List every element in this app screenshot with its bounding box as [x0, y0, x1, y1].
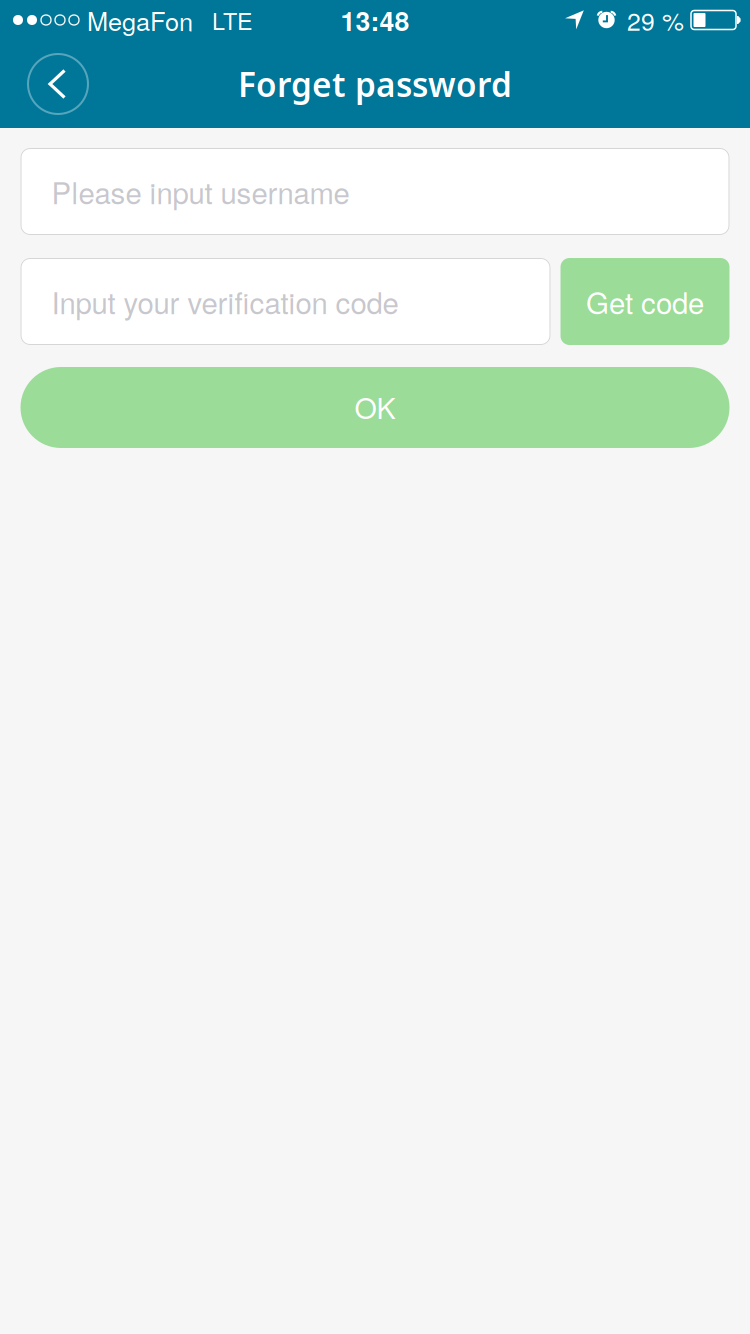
button[interactable]: Back	[14, 40, 102, 128]
staticText: 13:48	[340, 1, 409, 39]
staticText: Please input username	[51, 170, 349, 212]
button[interactable]: OK	[20, 367, 729, 448]
staticText: Forget password	[238, 61, 512, 107]
button[interactable]: Get code	[560, 258, 729, 345]
staticText: Input your verification code	[51, 280, 398, 322]
staticText: Get code	[586, 280, 704, 322]
staticText: LTE	[212, 3, 253, 37]
staticText: MegaFon	[87, 2, 193, 38]
staticText: 29 %	[627, 2, 684, 38]
staticText: OK	[354, 386, 395, 427]
